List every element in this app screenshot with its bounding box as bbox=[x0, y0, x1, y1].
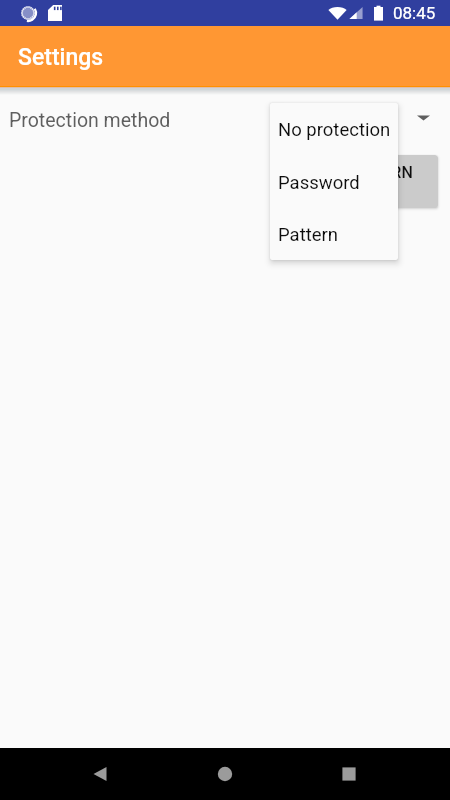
staticText: Pattern bbox=[278, 224, 339, 246]
staticText: Password bbox=[278, 172, 360, 194]
staticText: No protection bbox=[278, 119, 391, 141]
button[interactable]: Password bbox=[270, 156, 398, 209]
button[interactable]: No protection bbox=[270, 103, 398, 156]
button[interactable]: Back bbox=[76, 750, 124, 798]
staticText: Protection method bbox=[9, 109, 171, 132]
button[interactable]: Home bbox=[201, 750, 249, 798]
button[interactable]: Protection method bbox=[0, 95, 450, 145]
button[interactable]: Pattern bbox=[270, 209, 398, 260]
button[interactable]: PATTERN bbox=[328, 155, 438, 208]
staticText: PATTERN bbox=[344, 163, 413, 182]
staticText: Settings bbox=[18, 44, 104, 71]
staticText: 08:45 bbox=[393, 3, 436, 23]
button[interactable]: Recents bbox=[325, 750, 373, 798]
